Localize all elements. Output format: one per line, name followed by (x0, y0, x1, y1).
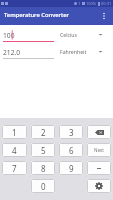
button[interactable]: 1 (2, 125, 27, 139)
staticText: 00:31 (101, 1, 112, 6)
button[interactable]: More options (97, 9, 111, 23)
staticText: 7 (12, 163, 17, 174)
button[interactable]: 8 (31, 161, 55, 175)
staticText: Celcius (60, 31, 78, 38)
button[interactable]: 2 (31, 125, 55, 139)
button[interactable]: 212.0 (3, 44, 54, 59)
button[interactable]: 7 (2, 161, 27, 175)
button[interactable]: 9 (59, 161, 83, 175)
staticText: Fahrenheit (60, 48, 87, 55)
button[interactable]: 100 (3, 27, 54, 42)
button[interactable]: dot (87, 161, 111, 175)
staticText: 1 (12, 127, 17, 138)
staticText: 0 (41, 181, 46, 192)
staticText: 9 (69, 163, 74, 174)
staticText: 3 (69, 127, 74, 138)
button[interactable]: Celcius (60, 27, 103, 42)
button[interactable]: back (87, 125, 111, 139)
staticText: 5 (41, 145, 46, 156)
button[interactable]: next (87, 143, 111, 157)
staticText: Next (94, 147, 104, 153)
staticText: Temperature Converter (4, 11, 69, 19)
staticText: 2 (41, 127, 46, 138)
staticText: 8 (41, 163, 46, 174)
staticText: 4 (12, 145, 17, 156)
staticText: 100% (86, 1, 97, 6)
button[interactable]: 4 (2, 143, 27, 157)
button[interactable]: 0 (31, 179, 55, 193)
button[interactable]: 6 (59, 143, 83, 157)
button[interactable]: 3 (59, 125, 83, 139)
button[interactable]: 5 (31, 143, 55, 157)
button[interactable]: settings (87, 179, 111, 193)
staticText: 212.0 (3, 48, 21, 57)
button[interactable]: Fahrenheit (60, 44, 103, 59)
staticText: 6 (69, 145, 74, 156)
staticText: 1 (78, 1, 81, 6)
staticText: 100 (3, 31, 15, 40)
